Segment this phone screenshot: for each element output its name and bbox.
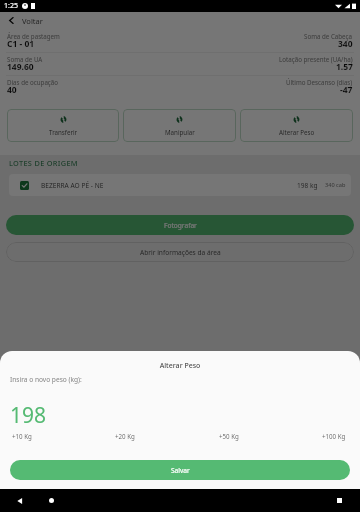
button[interactable]: Transferir <box>7 109 119 142</box>
button[interactable]: +100 Kg <box>322 432 346 440</box>
staticText: Dias de ocupação <box>7 78 59 86</box>
staticText: Voltar <box>22 16 43 26</box>
staticText: +50 Kg <box>219 432 239 440</box>
staticText: BEZERRA AO PÉ - NE <box>41 181 104 190</box>
button[interactable]: Voltar <box>0 12 360 29</box>
staticText: Último Descanso (dias) <box>286 78 353 86</box>
staticText: +20 Kg <box>115 432 135 440</box>
staticText: -47 <box>340 84 353 96</box>
button[interactable]: Manipular <box>123 109 236 142</box>
button[interactable]: Alterar Peso <box>240 109 353 142</box>
staticText: Insira o novo peso (kg): <box>10 375 82 384</box>
button[interactable]: +20 Kg <box>115 432 135 440</box>
staticText: +10 Kg <box>12 432 32 440</box>
button[interactable]: BEZERRA AO PÉ - NE <box>9 174 351 196</box>
staticText: Alterar Peso <box>0 361 360 371</box>
button[interactable]: +50 Kg <box>219 432 239 440</box>
staticText: 198 kg <box>297 181 318 190</box>
staticText: Soma de Cabeça <box>304 32 353 40</box>
staticText: 149.60 <box>7 61 34 73</box>
staticText: +100 Kg <box>322 432 346 440</box>
button[interactable]: Salvar <box>10 460 350 480</box>
staticText: Transferir <box>49 128 78 136</box>
button[interactable]: Fotografar <box>6 215 354 235</box>
staticText: LOTES DE ORIGEM <box>9 158 78 168</box>
staticText: 340 cab <box>325 181 346 189</box>
staticText: Área de pastagem <box>7 32 60 40</box>
staticText: 340 <box>338 38 353 50</box>
staticText: Manipular <box>165 128 195 136</box>
button[interactable]: Back <box>13 494 26 507</box>
staticText: Soma de UA <box>7 55 43 63</box>
staticText: Lotação presente (UA/ha) <box>279 55 353 63</box>
staticText: 1.57 <box>336 61 353 73</box>
button[interactable]: Recent apps <box>333 494 346 507</box>
staticText: Fotografar <box>164 221 197 230</box>
staticText: 1:25 <box>4 1 18 11</box>
staticText: Abrir informações da área <box>140 248 221 257</box>
staticText: 40 <box>7 84 17 96</box>
staticText: Alterar Peso <box>279 128 315 136</box>
button[interactable]: Home <box>45 494 58 507</box>
button[interactable]: +10 Kg <box>12 432 32 440</box>
staticText: C1 - 01 <box>7 38 35 50</box>
staticText: 198 <box>10 401 47 430</box>
button[interactable]: Abrir informações da área <box>6 242 354 262</box>
staticText: Salvar <box>171 466 190 475</box>
